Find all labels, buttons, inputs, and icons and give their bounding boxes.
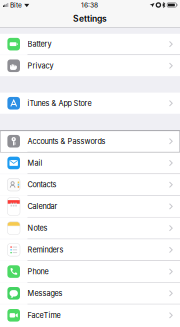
staticText: Reminders: [27, 245, 63, 254]
staticText: Notes: [27, 224, 47, 233]
staticText: iTunes & App Store: [27, 99, 91, 108]
button[interactable]: Calendar: [0, 196, 180, 217]
staticText: Bite: [10, 1, 22, 9]
staticText: FaceTime: [27, 311, 60, 320]
staticText: Mail: [27, 158, 42, 167]
staticText: Accounts & Passwords: [27, 137, 105, 146]
staticText: 16:38: [81, 1, 98, 9]
button[interactable]: Accounts & Passwords: [0, 131, 180, 152]
button[interactable]: Contacts: [0, 174, 180, 195]
staticText: Settings: [73, 13, 107, 24]
staticText: Contacts: [27, 180, 56, 189]
staticText: Calendar: [27, 202, 57, 211]
button[interactable]: Reminders: [0, 239, 180, 260]
button[interactable]: Notes: [0, 218, 180, 239]
staticText: Phone: [27, 267, 48, 276]
button[interactable]: Battery: [0, 34, 180, 54]
button[interactable]: Privacy: [0, 55, 180, 76]
button[interactable]: iTunes & App Store: [0, 93, 180, 114]
button[interactable]: FaceTime: [0, 304, 180, 326]
staticText: Battery: [27, 40, 51, 49]
button[interactable]: Mail: [0, 152, 180, 173]
button[interactable]: Messages: [0, 283, 180, 304]
staticText: Messages: [27, 289, 62, 298]
button[interactable]: Phone: [0, 261, 180, 282]
staticText: Privacy: [27, 61, 53, 70]
